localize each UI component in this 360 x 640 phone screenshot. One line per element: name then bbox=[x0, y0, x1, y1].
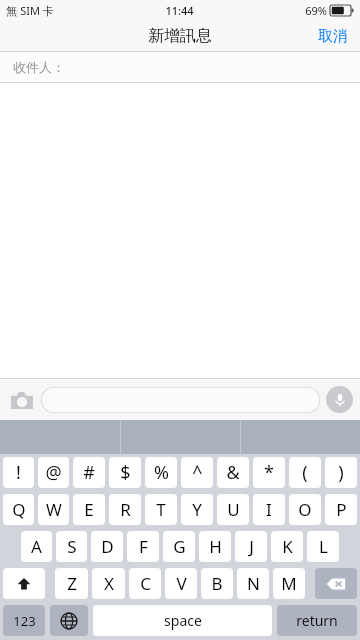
staticText: W bbox=[46, 498, 62, 521]
staticText: H bbox=[209, 535, 222, 558]
staticText: return bbox=[296, 611, 338, 630]
button[interactable]: S bbox=[56, 531, 87, 562]
staticText: X bbox=[104, 572, 114, 595]
button[interactable]: Audio message bbox=[326, 386, 353, 413]
button[interactable]: F bbox=[127, 531, 159, 562]
staticText: & bbox=[226, 460, 240, 485]
button[interactable]: J bbox=[235, 531, 267, 562]
button[interactable]: 123 bbox=[3, 605, 45, 636]
button[interactable]: % bbox=[145, 457, 177, 488]
staticText: V bbox=[176, 572, 187, 595]
button[interactable]: E bbox=[73, 494, 105, 525]
staticText: D bbox=[101, 535, 114, 558]
button[interactable]: ^ bbox=[181, 457, 213, 488]
staticText: 收件人： bbox=[13, 59, 65, 75]
staticText: 新增訊息 bbox=[148, 26, 212, 46]
staticText: S bbox=[67, 535, 77, 558]
button[interactable]: # bbox=[73, 457, 105, 488]
staticText: Y bbox=[192, 498, 202, 521]
button[interactable]: Shift bbox=[3, 568, 45, 599]
button[interactable]: A bbox=[21, 531, 52, 562]
staticText: ! bbox=[16, 460, 21, 485]
staticText: K bbox=[282, 535, 293, 558]
staticText: 69% bbox=[305, 3, 327, 18]
staticText: B bbox=[211, 572, 223, 595]
staticText: U bbox=[227, 498, 240, 521]
staticText: 123 bbox=[13, 612, 36, 630]
button[interactable]: ( bbox=[289, 457, 321, 488]
button[interactable] bbox=[41, 387, 320, 413]
staticText: E bbox=[84, 498, 94, 521]
button[interactable]: space bbox=[93, 605, 272, 636]
button[interactable]: return bbox=[277, 605, 357, 636]
staticText: ( bbox=[302, 460, 308, 485]
button[interactable]: Y bbox=[181, 494, 213, 525]
button[interactable]: T bbox=[145, 494, 177, 525]
button[interactable]: L bbox=[307, 531, 339, 562]
staticText: R bbox=[120, 498, 131, 521]
button[interactable]: Camera bbox=[7, 385, 37, 415]
button[interactable]: V bbox=[165, 568, 197, 599]
staticText: O bbox=[298, 498, 312, 521]
button[interactable]: D bbox=[91, 531, 123, 562]
button[interactable]: H bbox=[199, 531, 231, 562]
staticText: J bbox=[249, 535, 254, 558]
staticText: Q bbox=[12, 498, 26, 521]
button[interactable]: P bbox=[325, 494, 357, 525]
staticText: M bbox=[281, 572, 297, 595]
button[interactable]: Change keyboard language bbox=[50, 605, 88, 636]
staticText: P bbox=[336, 498, 347, 521]
staticText: 無 SIM 卡 bbox=[6, 3, 54, 18]
staticText: N bbox=[247, 572, 260, 595]
staticText: G bbox=[173, 535, 186, 558]
button[interactable]: Z bbox=[55, 568, 88, 599]
button[interactable]: 收件人： bbox=[0, 52, 360, 82]
button[interactable]: ! bbox=[3, 457, 34, 488]
button[interactable]: X bbox=[92, 568, 125, 599]
button[interactable]: & bbox=[217, 457, 249, 488]
button[interactable]: K bbox=[271, 531, 303, 562]
button[interactable]: Q bbox=[3, 494, 34, 525]
button[interactable]: U bbox=[217, 494, 249, 525]
staticText: F bbox=[139, 535, 148, 558]
staticText: T bbox=[156, 498, 166, 521]
staticText: 11:44 bbox=[165, 3, 194, 18]
button[interactable]: R bbox=[109, 494, 141, 525]
staticText: ) bbox=[338, 460, 344, 485]
button[interactable]: N bbox=[237, 568, 269, 599]
button[interactable]: G bbox=[163, 531, 195, 562]
button[interactable]: C bbox=[129, 568, 161, 599]
button[interactable]: O bbox=[289, 494, 321, 525]
button[interactable]: M bbox=[273, 568, 305, 599]
staticText: space bbox=[164, 611, 202, 630]
button[interactable]: I bbox=[253, 494, 285, 525]
button[interactable]: Backspace bbox=[315, 568, 357, 599]
button[interactable]: 取消 bbox=[306, 21, 360, 52]
staticText: C bbox=[140, 572, 151, 595]
button[interactable]: B bbox=[201, 568, 233, 599]
button[interactable]: ) bbox=[325, 457, 357, 488]
staticText: @ bbox=[45, 460, 62, 485]
staticText: A bbox=[31, 535, 42, 558]
staticText: % bbox=[154, 460, 169, 485]
button[interactable]: $ bbox=[109, 457, 141, 488]
staticText: ^ bbox=[192, 460, 203, 485]
staticText: * bbox=[264, 460, 274, 485]
button[interactable]: * bbox=[253, 457, 285, 488]
staticText: Z bbox=[67, 572, 77, 595]
staticText: # bbox=[83, 460, 95, 485]
staticText: 取消 bbox=[318, 27, 348, 46]
button[interactable]: W bbox=[38, 494, 69, 525]
staticText: L bbox=[319, 535, 328, 558]
staticText: I bbox=[266, 498, 272, 521]
button[interactable]: @ bbox=[38, 457, 69, 488]
staticText: $ bbox=[120, 460, 131, 485]
